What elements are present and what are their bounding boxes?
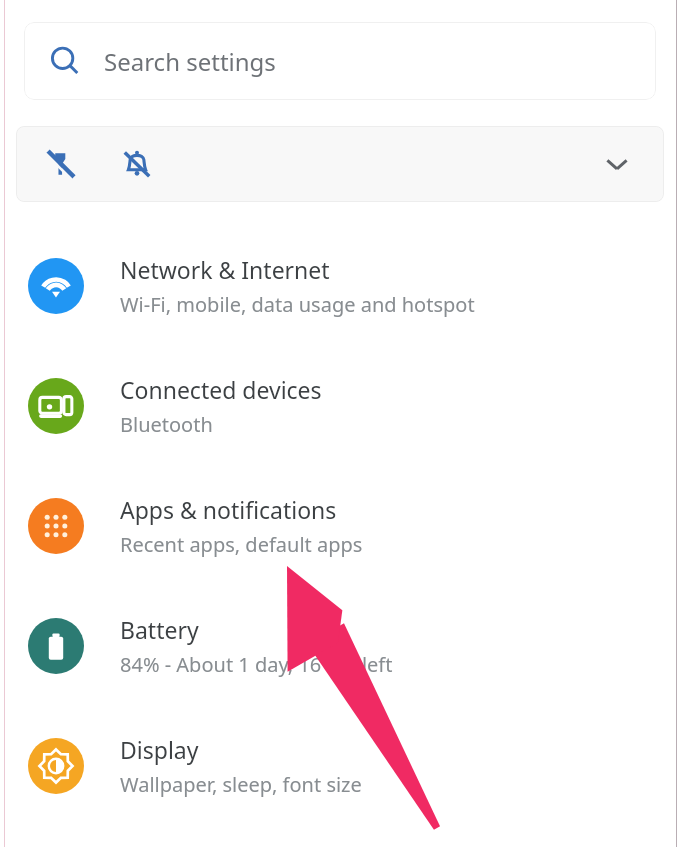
staticText: Search settings [104,45,276,78]
staticText: Battery [120,614,199,645]
button[interactable]: Connected devices [0,346,680,466]
staticText: Connected devices [120,374,322,405]
button[interactable]: Search settings [24,22,656,100]
staticText: Display [120,734,199,765]
staticText: Bluetooth [120,411,213,438]
button[interactable]: Display [0,706,680,826]
button[interactable]: Expand quick settings [590,137,644,191]
staticText: 84% - About 1 day, 16 hrs left [120,651,393,678]
staticText: Wallpaper, sleep, font size [120,771,362,798]
staticText: Apps & notifications [120,494,337,525]
staticText: Wi-Fi, mobile, data usage and hotspot [120,291,475,318]
button[interactable]: Network & Internet [0,226,680,346]
button[interactable]: Battery [0,586,680,706]
staticText: Network & Internet [120,254,330,285]
button[interactable]: Do not disturb [114,141,160,187]
button[interactable]: Flashlight off [38,141,84,187]
button[interactable]: Apps & notifications [0,466,680,586]
staticText: Recent apps, default apps [120,531,363,558]
